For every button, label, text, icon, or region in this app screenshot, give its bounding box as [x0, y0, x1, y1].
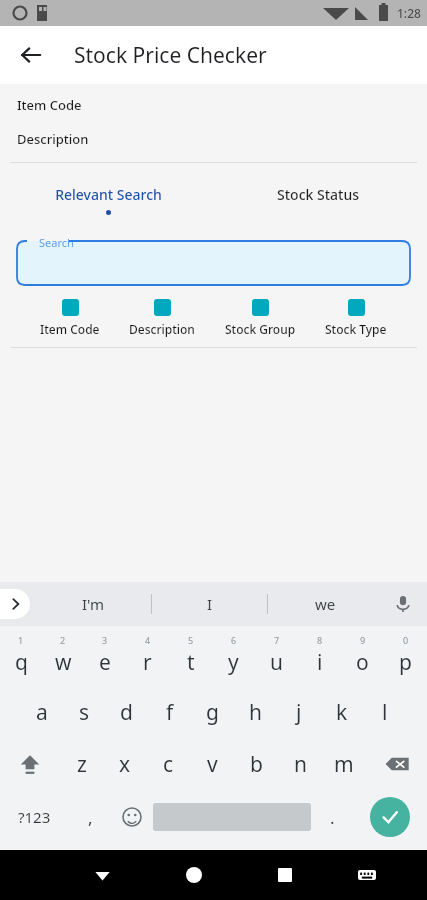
- button[interactable]: Recents: [239, 850, 330, 900]
- staticText: m: [334, 750, 354, 779]
- button[interactable]: .: [311, 790, 353, 844]
- button[interactable]: ,: [69, 790, 111, 844]
- button[interactable]: 4: [126, 632, 169, 686]
- button[interactable]: Voice input: [387, 588, 419, 620]
- button[interactable]: we: [268, 582, 383, 626]
- button[interactable]: 5: [169, 632, 212, 686]
- button[interactable]: 9: [341, 632, 384, 686]
- button[interactable]: Item Code: [38, 299, 102, 337]
- button[interactable]: g: [191, 686, 234, 738]
- staticText: a: [36, 698, 48, 727]
- button[interactable]: 1: [0, 632, 42, 686]
- staticText: 6: [231, 634, 237, 646]
- staticText: y: [228, 648, 239, 677]
- staticText: ?123: [18, 807, 51, 827]
- button[interactable]: More suggestions: [0, 589, 30, 619]
- staticText: Search: [39, 235, 74, 250]
- button[interactable]: [17, 241, 410, 285]
- staticText: v: [207, 750, 218, 779]
- button[interactable]: Description: [127, 299, 197, 337]
- button[interactable]: s: [63, 686, 105, 738]
- staticText: t: [187, 648, 195, 677]
- button[interactable]: x: [103, 738, 146, 790]
- button[interactable]: Relevant Search: [4, 183, 213, 217]
- staticText: Stock Group: [225, 321, 296, 337]
- button[interactable]: d: [105, 686, 148, 738]
- button[interactable]: 6: [212, 632, 255, 686]
- button[interactable]: a: [21, 686, 63, 738]
- staticText: x: [119, 750, 131, 779]
- button[interactable]: 3: [84, 632, 126, 686]
- staticText: ,: [88, 806, 93, 829]
- button[interactable]: Stock Type: [323, 299, 389, 337]
- button[interactable]: 8: [298, 632, 341, 686]
- staticText: I'm: [82, 594, 105, 614]
- staticText: .: [330, 806, 335, 829]
- button[interactable]: Stock Group: [223, 299, 298, 337]
- button[interactable]: Enter: [370, 797, 410, 837]
- staticText: 2: [60, 634, 66, 646]
- staticText: 1: [18, 634, 24, 646]
- staticText: Stock Price Checker: [74, 41, 267, 70]
- button[interactable]: n: [278, 738, 322, 790]
- staticText: c: [163, 750, 174, 779]
- staticText: 1:28: [397, 5, 421, 21]
- button[interactable]: Shift: [0, 738, 60, 790]
- staticText: w: [55, 648, 72, 677]
- button[interactable]: Stock Status: [213, 183, 423, 217]
- staticText: o: [356, 648, 369, 677]
- button[interactable]: ?123: [0, 790, 69, 844]
- staticText: 7: [274, 634, 280, 646]
- button[interactable]: h: [234, 686, 277, 738]
- staticText: 5: [188, 634, 194, 646]
- button[interactable]: b: [234, 738, 278, 790]
- staticText: Description: [17, 130, 89, 148]
- button[interactable]: l: [363, 686, 406, 738]
- staticText: 3: [102, 634, 108, 646]
- staticText: I: [207, 594, 213, 614]
- button[interactable]: f: [148, 686, 191, 738]
- staticText: k: [336, 698, 348, 727]
- button[interactable]: 0: [384, 632, 427, 686]
- staticText: Item Code: [17, 96, 82, 114]
- staticText: b: [250, 750, 263, 779]
- staticText: we: [315, 594, 336, 614]
- staticText: l: [382, 698, 388, 727]
- staticText: e: [99, 648, 111, 677]
- button[interactable]: v: [190, 738, 234, 790]
- staticText: n: [294, 750, 307, 779]
- button[interactable]: z: [60, 738, 103, 790]
- button[interactable]: Home: [148, 850, 239, 900]
- button[interactable]: c: [146, 738, 190, 790]
- staticText: j: [296, 698, 302, 727]
- staticText: i: [317, 648, 323, 677]
- button[interactable]: Switch keyboard: [330, 850, 404, 900]
- staticText: q: [15, 648, 28, 677]
- button[interactable]: j: [277, 686, 320, 738]
- button[interactable]: k: [320, 686, 363, 738]
- button[interactable]: Backspace: [366, 738, 427, 790]
- staticText: 0: [403, 634, 409, 646]
- staticText: Stock Status: [277, 185, 359, 204]
- button[interactable]: m: [322, 738, 366, 790]
- button[interactable]: 2: [42, 632, 84, 686]
- staticText: f: [166, 698, 174, 727]
- staticText: Item Code: [40, 321, 100, 337]
- staticText: u: [270, 648, 283, 677]
- button[interactable]: Back: [10, 34, 52, 76]
- staticText: z: [77, 750, 87, 779]
- button[interactable]: Hide keyboard: [57, 850, 148, 900]
- staticText: r: [143, 648, 152, 677]
- staticText: h: [249, 698, 262, 727]
- staticText: 8: [317, 634, 323, 646]
- button[interactable]: I: [152, 582, 267, 626]
- button[interactable]: I'm: [36, 582, 151, 626]
- staticText: Relevant Search: [55, 185, 162, 204]
- button[interactable]: Emoji: [111, 790, 153, 844]
- staticText: s: [79, 698, 90, 727]
- staticText: Description: [129, 321, 195, 337]
- button[interactable]: 7: [255, 632, 298, 686]
- staticText: p: [399, 648, 412, 677]
- staticText: 4: [145, 634, 151, 646]
